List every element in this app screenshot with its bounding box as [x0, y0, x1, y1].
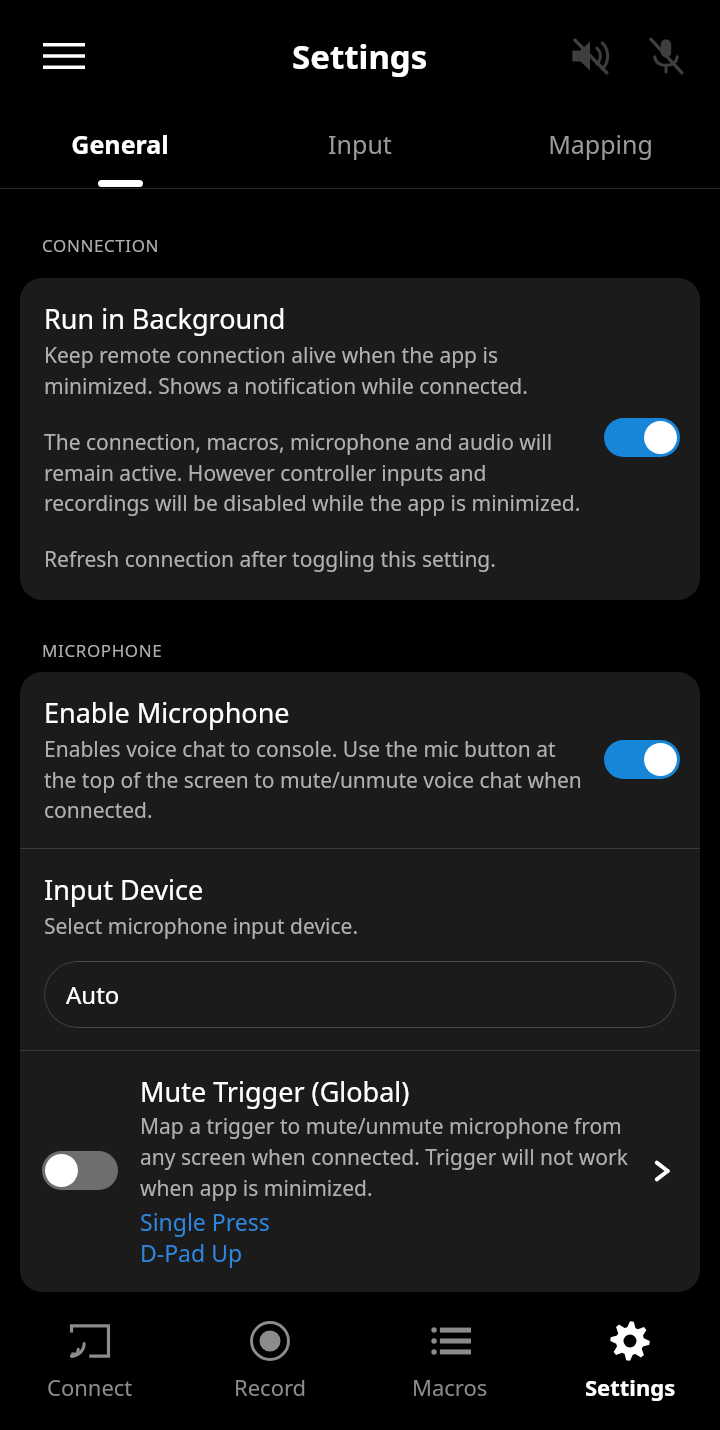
button[interactable]: Settings — [540, 1296, 720, 1430]
staticText: Single Press — [140, 1206, 270, 1237]
button[interactable]: Mute microphone — [634, 24, 698, 88]
staticText: Refresh connection after toggling this s… — [44, 545, 496, 574]
staticText: Auto — [66, 978, 120, 1011]
staticText: The connection, macros, microphone and a… — [44, 428, 590, 517]
staticText: CONNECTION — [42, 234, 160, 257]
button[interactable]: On — [604, 740, 680, 779]
button[interactable]: Mute audio — [558, 24, 622, 88]
staticText: Mapping — [548, 127, 653, 161]
staticText: Input — [328, 127, 392, 161]
staticText: MICROPHONE — [42, 639, 163, 662]
button[interactable]: Input — [240, 112, 480, 189]
staticText: Settings — [292, 34, 428, 79]
staticText: Macros — [412, 1372, 488, 1402]
staticText: D-Pad Up — [140, 1237, 243, 1268]
staticText: Map a trigger to mute/unmute microphone … — [140, 1112, 642, 1202]
staticText: Settings — [585, 1372, 676, 1402]
button[interactable]: General — [0, 112, 240, 189]
button[interactable]: Mapping — [480, 112, 720, 189]
button[interactable]: Input Device — [20, 849, 700, 1050]
staticText: Run in Background — [44, 300, 286, 337]
staticText: Mute Trigger (Global) — [140, 1073, 410, 1110]
button[interactable]: Macros — [360, 1296, 540, 1430]
button[interactable]: Record — [180, 1296, 360, 1430]
button[interactable]: Menu — [30, 22, 98, 90]
staticText: Input Device — [44, 871, 204, 908]
button[interactable]: Connect — [0, 1296, 180, 1430]
staticText: Record — [234, 1372, 307, 1402]
staticText: Select microphone input device. — [44, 912, 359, 941]
staticText: General — [71, 127, 169, 161]
staticText: Enable Microphone — [44, 694, 290, 731]
button[interactable]: On — [604, 418, 680, 457]
button[interactable]: Off — [42, 1151, 118, 1190]
button[interactable]: Enable Microphone — [20, 672, 700, 848]
button[interactable]: Auto — [44, 961, 676, 1028]
staticText: Keep remote connection alive when the ap… — [44, 341, 590, 400]
staticText: Enables voice chat to console. Use the m… — [44, 735, 590, 824]
button[interactable]: Run in Background — [20, 278, 700, 600]
button[interactable]: Off — [20, 1051, 700, 1292]
staticText: Connect — [47, 1372, 133, 1402]
